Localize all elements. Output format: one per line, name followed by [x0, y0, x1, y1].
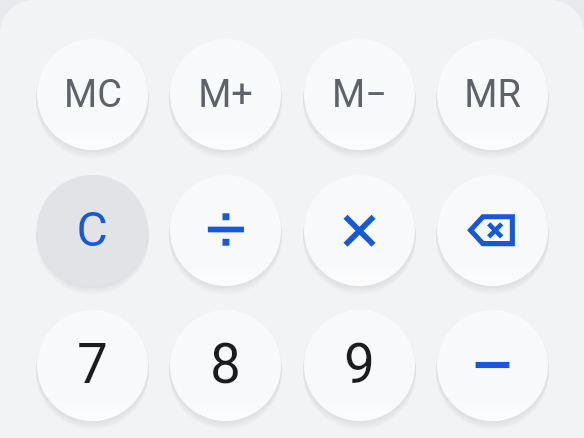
button[interactable]: M+ [170, 39, 281, 150]
staticText: 9 [344, 332, 375, 396]
button[interactable]: Multiply [304, 175, 415, 286]
staticText: M+ [198, 72, 253, 117]
staticText: MC [64, 72, 122, 117]
button[interactable]: C [37, 175, 148, 286]
button[interactable]: 9 [304, 310, 415, 421]
button[interactable]: MR [437, 39, 548, 150]
button[interactable]: Subtract [437, 310, 548, 421]
staticText: 8 [210, 332, 241, 396]
button[interactable]: M− [304, 39, 415, 150]
button[interactable]: 8 [170, 310, 281, 421]
button[interactable]: MC [37, 39, 148, 150]
staticText: 7 [77, 332, 108, 396]
button[interactable]: Backspace [437, 175, 548, 286]
button[interactable]: Divide [170, 175, 281, 286]
staticText: M− [332, 72, 387, 117]
button[interactable]: 7 [37, 310, 148, 421]
staticText: MR [464, 72, 521, 117]
staticText: C [76, 201, 108, 257]
